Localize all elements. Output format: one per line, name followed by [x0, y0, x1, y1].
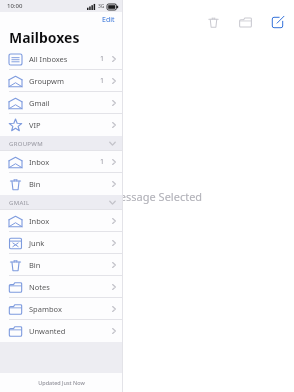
staticText: Inbox — [29, 157, 50, 167]
button[interactable]: Bin — [0, 173, 123, 195]
staticText: 1 — [100, 76, 105, 86]
button[interactable]: Notes — [0, 276, 123, 298]
staticText: 1 — [100, 157, 105, 167]
button[interactable]: Gmail — [0, 92, 123, 114]
staticText: GMAIL — [9, 199, 30, 207]
button[interactable]: Compose — [268, 13, 286, 31]
staticText: Gmail — [29, 98, 50, 108]
staticText: Spambox — [29, 304, 62, 314]
button[interactable]: Spambox — [0, 298, 123, 320]
button[interactable]: GROUPWM — [0, 136, 123, 151]
staticText: All Inboxes — [29, 54, 68, 64]
staticText: Updated Just Now — [38, 379, 85, 386]
button[interactable]: Unwanted — [0, 320, 123, 342]
button[interactable]: Bin — [0, 254, 123, 276]
staticText: Bin — [29, 260, 41, 270]
staticText: No Message Selected — [92, 189, 203, 204]
staticText: Inbox — [29, 216, 50, 226]
button[interactable]: Move to folder — [236, 13, 254, 31]
staticText: 1 — [100, 54, 105, 64]
staticText: 3G — [98, 3, 105, 10]
button[interactable]: GMAIL — [0, 195, 123, 210]
staticText: Bin — [29, 179, 41, 189]
button[interactable]: Delete — [204, 13, 222, 31]
staticText: Unwanted — [29, 326, 66, 336]
staticText: GROUPWM — [9, 140, 43, 148]
button[interactable]: Inbox — [0, 210, 123, 232]
staticText: 10:00 — [7, 2, 23, 10]
button[interactable]: Edit — [100, 14, 117, 26]
staticText: Groupwm — [29, 76, 64, 86]
staticText: Notes — [29, 282, 50, 292]
staticText: Edit — [102, 15, 115, 25]
button[interactable]: VIP — [0, 114, 123, 136]
button[interactable]: Groupwm — [0, 70, 123, 92]
button[interactable]: Inbox — [0, 151, 123, 173]
staticText: Junk — [29, 238, 45, 248]
staticText: VIP — [29, 120, 41, 130]
staticText: Mailboxes — [9, 28, 80, 46]
button[interactable]: All Inboxes — [0, 48, 123, 70]
button[interactable]: Junk — [0, 232, 123, 254]
